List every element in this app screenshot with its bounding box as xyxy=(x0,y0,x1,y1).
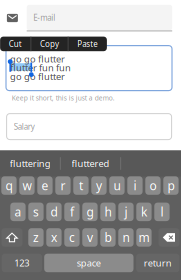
staticText: m xyxy=(138,229,149,245)
staticText: n xyxy=(122,229,129,245)
button[interactable]: p xyxy=(163,176,179,195)
button[interactable]: j xyxy=(118,203,134,221)
button[interactable]: q xyxy=(1,176,17,195)
button[interactable]: Salary xyxy=(7,114,172,140)
button[interactable]: y xyxy=(91,176,107,195)
button[interactable]: u xyxy=(109,176,125,195)
staticText: q xyxy=(5,178,12,193)
staticText: j xyxy=(124,204,127,220)
button[interactable]: k xyxy=(136,203,152,221)
staticText: x xyxy=(51,229,57,245)
staticText: v xyxy=(87,229,93,245)
staticText: e xyxy=(41,178,48,193)
staticText: d xyxy=(50,204,57,220)
staticText: w xyxy=(22,178,31,193)
staticText: Copy xyxy=(40,39,59,49)
staticText: r xyxy=(60,178,65,193)
staticText: Cut xyxy=(9,39,22,49)
button[interactable]: v xyxy=(82,228,98,247)
staticText: 123 xyxy=(14,257,29,269)
button[interactable]: E-mail xyxy=(27,5,172,30)
button[interactable]: return xyxy=(136,254,179,272)
button[interactable]: space xyxy=(44,254,133,272)
button[interactable]: t xyxy=(73,176,89,195)
button[interactable]: i xyxy=(127,176,143,195)
button[interactable]: 123 xyxy=(2,254,42,272)
staticText: return xyxy=(144,257,172,269)
staticText: p xyxy=(167,178,174,193)
staticText: Paste xyxy=(77,39,98,49)
button[interactable]: n xyxy=(118,228,134,247)
button[interactable]: d xyxy=(46,203,62,221)
staticText: g xyxy=(86,204,93,220)
staticText: k xyxy=(141,204,147,220)
button[interactable]: c xyxy=(64,228,80,247)
staticText: s xyxy=(33,204,39,220)
button[interactable]: fluttering xyxy=(0,150,60,176)
button[interactable]: f xyxy=(64,203,80,221)
button[interactable]: b xyxy=(100,228,116,247)
staticText: h xyxy=(104,204,111,220)
staticText: go go flutter xyxy=(10,70,65,83)
staticText: go go flutter xyxy=(10,53,65,65)
button[interactable]: Cut xyxy=(0,37,30,51)
staticText: space xyxy=(77,257,101,269)
staticText: f xyxy=(70,204,74,220)
button[interactable]: z xyxy=(28,228,44,247)
button[interactable]: s xyxy=(28,203,44,221)
staticText: a xyxy=(14,204,21,220)
button[interactable]: l xyxy=(154,203,170,221)
button[interactable]: r xyxy=(55,176,71,195)
staticText: c xyxy=(69,229,75,245)
button[interactable]: e xyxy=(37,176,53,195)
staticText: l xyxy=(160,204,163,220)
staticText: y xyxy=(96,178,102,193)
staticText: Keep it short, this is just a demo. xyxy=(12,94,115,102)
staticText: fluttered xyxy=(71,157,109,170)
staticText: t xyxy=(79,178,83,193)
staticText: z xyxy=(33,229,39,245)
staticText: u xyxy=(113,178,120,193)
staticText: i xyxy=(133,178,136,193)
button[interactable]: a xyxy=(10,203,26,221)
button[interactable]: Shift xyxy=(1,228,22,247)
button[interactable]: Copy xyxy=(31,37,68,51)
staticText: b xyxy=(104,229,111,245)
button[interactable]: Paste xyxy=(68,37,107,51)
staticText: Salary xyxy=(14,121,35,132)
staticText: o xyxy=(149,178,156,193)
button[interactable]: Delete xyxy=(158,228,179,247)
button[interactable]: fluttered xyxy=(60,150,121,176)
button[interactable]: m xyxy=(136,228,152,247)
button[interactable]: w xyxy=(19,176,35,195)
staticText: fluttering xyxy=(10,157,51,170)
button[interactable]: g xyxy=(82,203,98,221)
staticText: flutter fun fun xyxy=(10,61,71,74)
button[interactable]: h xyxy=(100,203,116,221)
button[interactable]: x xyxy=(46,228,62,247)
staticText: E-mail xyxy=(33,12,55,23)
button[interactable]: o xyxy=(145,176,161,195)
